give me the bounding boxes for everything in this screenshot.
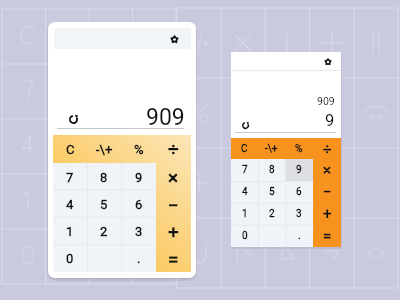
button[interactable]: −: [313, 181, 341, 203]
button[interactable]: -\+: [87, 135, 121, 163]
staticText: −: [168, 194, 179, 216]
button[interactable]: =: [313, 225, 341, 247]
staticText: 0: [66, 251, 74, 266]
button[interactable]: 6: [285, 181, 313, 203]
staticText: 5: [269, 186, 275, 198]
button[interactable]: Settings: [320, 54, 335, 69]
staticText: %: [295, 143, 303, 155]
button[interactable]: ×: [156, 163, 191, 191]
button[interactable]: Clear: [66, 112, 80, 126]
staticText: 9: [135, 170, 143, 185]
button[interactable]: 7: [53, 163, 87, 191]
staticText: 7: [66, 170, 74, 185]
staticText: 909: [317, 95, 335, 107]
button[interactable]: 5: [87, 191, 121, 218]
staticText: ÷: [323, 140, 332, 158]
staticText: 0: [242, 230, 248, 242]
staticText: 1: [242, 208, 248, 220]
staticText: −: [323, 183, 332, 201]
button[interactable]: =: [156, 245, 191, 272]
button[interactable]: 7: [231, 159, 258, 181]
button[interactable]: Settings: [167, 32, 182, 47]
staticText: 909: [146, 104, 185, 131]
staticText: ×: [168, 166, 179, 188]
button[interactable]: 9: [121, 163, 156, 191]
staticText: 7: [242, 164, 248, 176]
staticText: +: [323, 205, 332, 223]
staticText: 3: [135, 224, 143, 239]
button[interactable]: 2: [87, 218, 121, 245]
button[interactable]: 8: [258, 159, 285, 181]
staticText: 3: [296, 208, 302, 220]
button[interactable]: ÷: [156, 135, 191, 163]
staticText: 9: [325, 111, 335, 130]
staticText: 2: [100, 224, 108, 239]
staticText: ×: [323, 161, 332, 179]
staticText: 1: [66, 224, 74, 239]
button[interactable]: −: [156, 191, 191, 218]
staticText: -\+: [96, 142, 113, 157]
button[interactable]: C: [53, 135, 87, 163]
staticText: 8: [100, 170, 108, 185]
button[interactable]: 9: [285, 159, 313, 181]
staticText: C: [241, 143, 248, 155]
button[interactable]: 2: [258, 203, 285, 225]
button[interactable]: %: [121, 135, 156, 163]
button[interactable]: 6: [121, 191, 156, 218]
button[interactable]: 4: [53, 191, 87, 218]
button[interactable]: Clear: [238, 118, 252, 132]
button[interactable]: +: [156, 218, 191, 245]
staticText: 8: [269, 164, 275, 176]
staticText: +: [168, 221, 179, 243]
staticText: =: [323, 227, 332, 245]
staticText: 9: [296, 164, 302, 176]
staticText: ÷: [168, 138, 179, 160]
staticText: -\+: [265, 143, 278, 155]
staticText: .: [137, 251, 141, 266]
button[interactable]: ×: [313, 159, 341, 181]
button[interactable]: 3: [285, 203, 313, 225]
button[interactable]: C: [231, 138, 258, 159]
button[interactable]: ÷: [313, 138, 341, 159]
button[interactable]: 5: [258, 181, 285, 203]
staticText: 5: [100, 197, 108, 212]
staticText: C: [66, 142, 75, 157]
staticText: %: [134, 142, 144, 157]
button[interactable]: %: [285, 138, 313, 159]
button[interactable]: 4: [231, 181, 258, 203]
button[interactable]: 0: [231, 225, 258, 247]
button[interactable]: .: [121, 245, 156, 272]
button[interactable]: 1: [231, 203, 258, 225]
staticText: 6: [296, 186, 302, 198]
staticText: 6: [135, 197, 143, 212]
staticText: 4: [66, 197, 74, 212]
staticText: 4: [242, 186, 248, 198]
button[interactable]: 0: [53, 245, 87, 272]
staticText: =: [168, 248, 179, 270]
button[interactable]: +: [313, 203, 341, 225]
button[interactable]: 1: [53, 218, 87, 245]
button[interactable]: 8: [87, 163, 121, 191]
button[interactable]: .: [285, 225, 313, 247]
staticText: .: [298, 230, 301, 242]
button[interactable]: -\+: [258, 138, 285, 159]
staticText: 2: [269, 208, 275, 220]
button[interactable]: 3: [121, 218, 156, 245]
